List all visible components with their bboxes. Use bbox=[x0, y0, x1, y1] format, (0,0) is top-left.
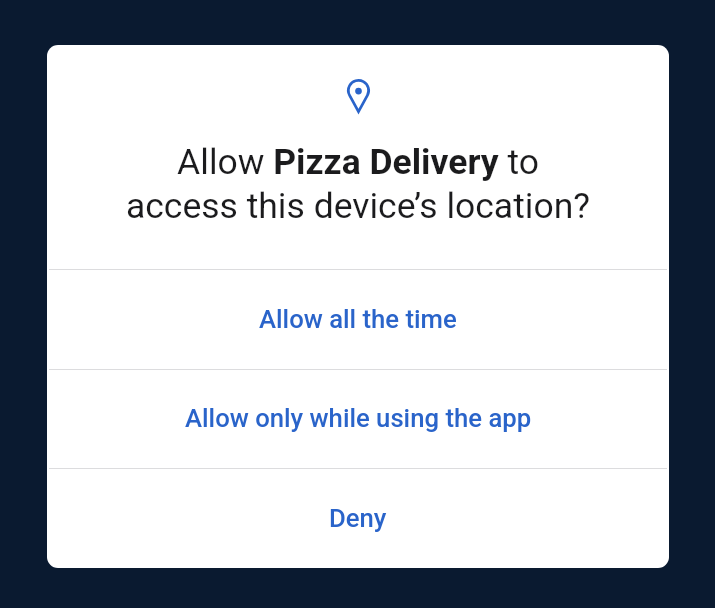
other: Location bbox=[347, 79, 370, 113]
staticText: Allow only while using the app bbox=[185, 403, 532, 433]
button[interactable]: Deny bbox=[47, 469, 669, 568]
button[interactable]: Allow only while using the app bbox=[47, 370, 669, 468]
staticText: Allow all the time bbox=[259, 304, 457, 334]
staticText: Deny bbox=[329, 503, 387, 533]
staticText: Allow Pizza Delivery to access this devi… bbox=[47, 141, 669, 227]
button[interactable]: Allow all the time bbox=[47, 270, 669, 369]
